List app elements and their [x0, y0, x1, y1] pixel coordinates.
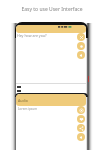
- button[interactable]: Volume: [77, 133, 85, 141]
- staticText: Audio: [18, 98, 28, 103]
- button[interactable]: Share: [77, 124, 85, 132]
- button[interactable]: Favorite: [77, 115, 85, 123]
- button[interactable]: Record: [77, 42, 85, 50]
- staticText: Lorem ipsum: [18, 107, 38, 111]
- button[interactable]: Close: [77, 33, 85, 41]
- staticText: Easy to use User Interface: [0, 6, 104, 13]
- button[interactable]: Speaker: [77, 51, 85, 59]
- button[interactable]: Camera: [77, 106, 85, 114]
- staticText: Hey how are you?: [17, 33, 47, 38]
